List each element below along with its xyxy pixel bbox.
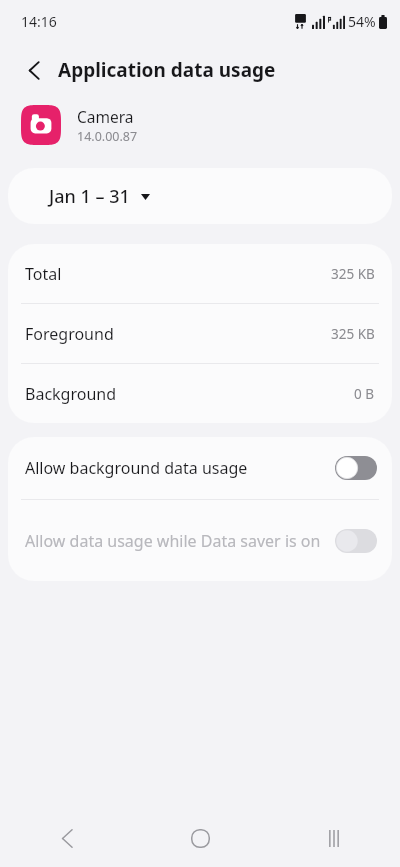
staticText: Camera — [77, 106, 134, 127]
button[interactable]: Foreground — [8, 304, 392, 363]
button[interactable]: Jan 1 – 31 — [8, 168, 392, 224]
staticText: 14.0.00.87 — [77, 128, 138, 145]
staticText: Allow data usage while Data saver is on — [25, 530, 322, 552]
staticText: 14:16 — [21, 12, 57, 31]
staticText: Jan 1 – 31 — [49, 184, 130, 209]
staticText: 54% — [348, 12, 376, 31]
button[interactable]: Toggle disabled — [334, 528, 378, 554]
staticText: 325 KB — [331, 265, 375, 283]
button[interactable]: Recents — [267, 809, 400, 867]
button[interactable]: Allow data usage while Data saver is on — [8, 500, 392, 581]
staticText: Foreground — [25, 323, 331, 345]
staticText: Background — [25, 383, 354, 405]
staticText: Total — [25, 263, 331, 285]
staticText: 325 KB — [331, 325, 375, 343]
button[interactable]: Background — [8, 364, 392, 423]
staticText: 0 B — [354, 385, 375, 403]
button[interactable]: Back — [0, 809, 134, 867]
staticText: Application data usage — [58, 57, 276, 83]
button[interactable]: Allow background data usage — [8, 437, 392, 499]
button[interactable]: Home — [134, 809, 267, 867]
staticText: Allow background data usage — [25, 457, 322, 479]
button[interactable]: Back — [19, 55, 49, 85]
button[interactable]: Total — [8, 244, 392, 303]
button[interactable]: Toggle off — [334, 455, 378, 481]
